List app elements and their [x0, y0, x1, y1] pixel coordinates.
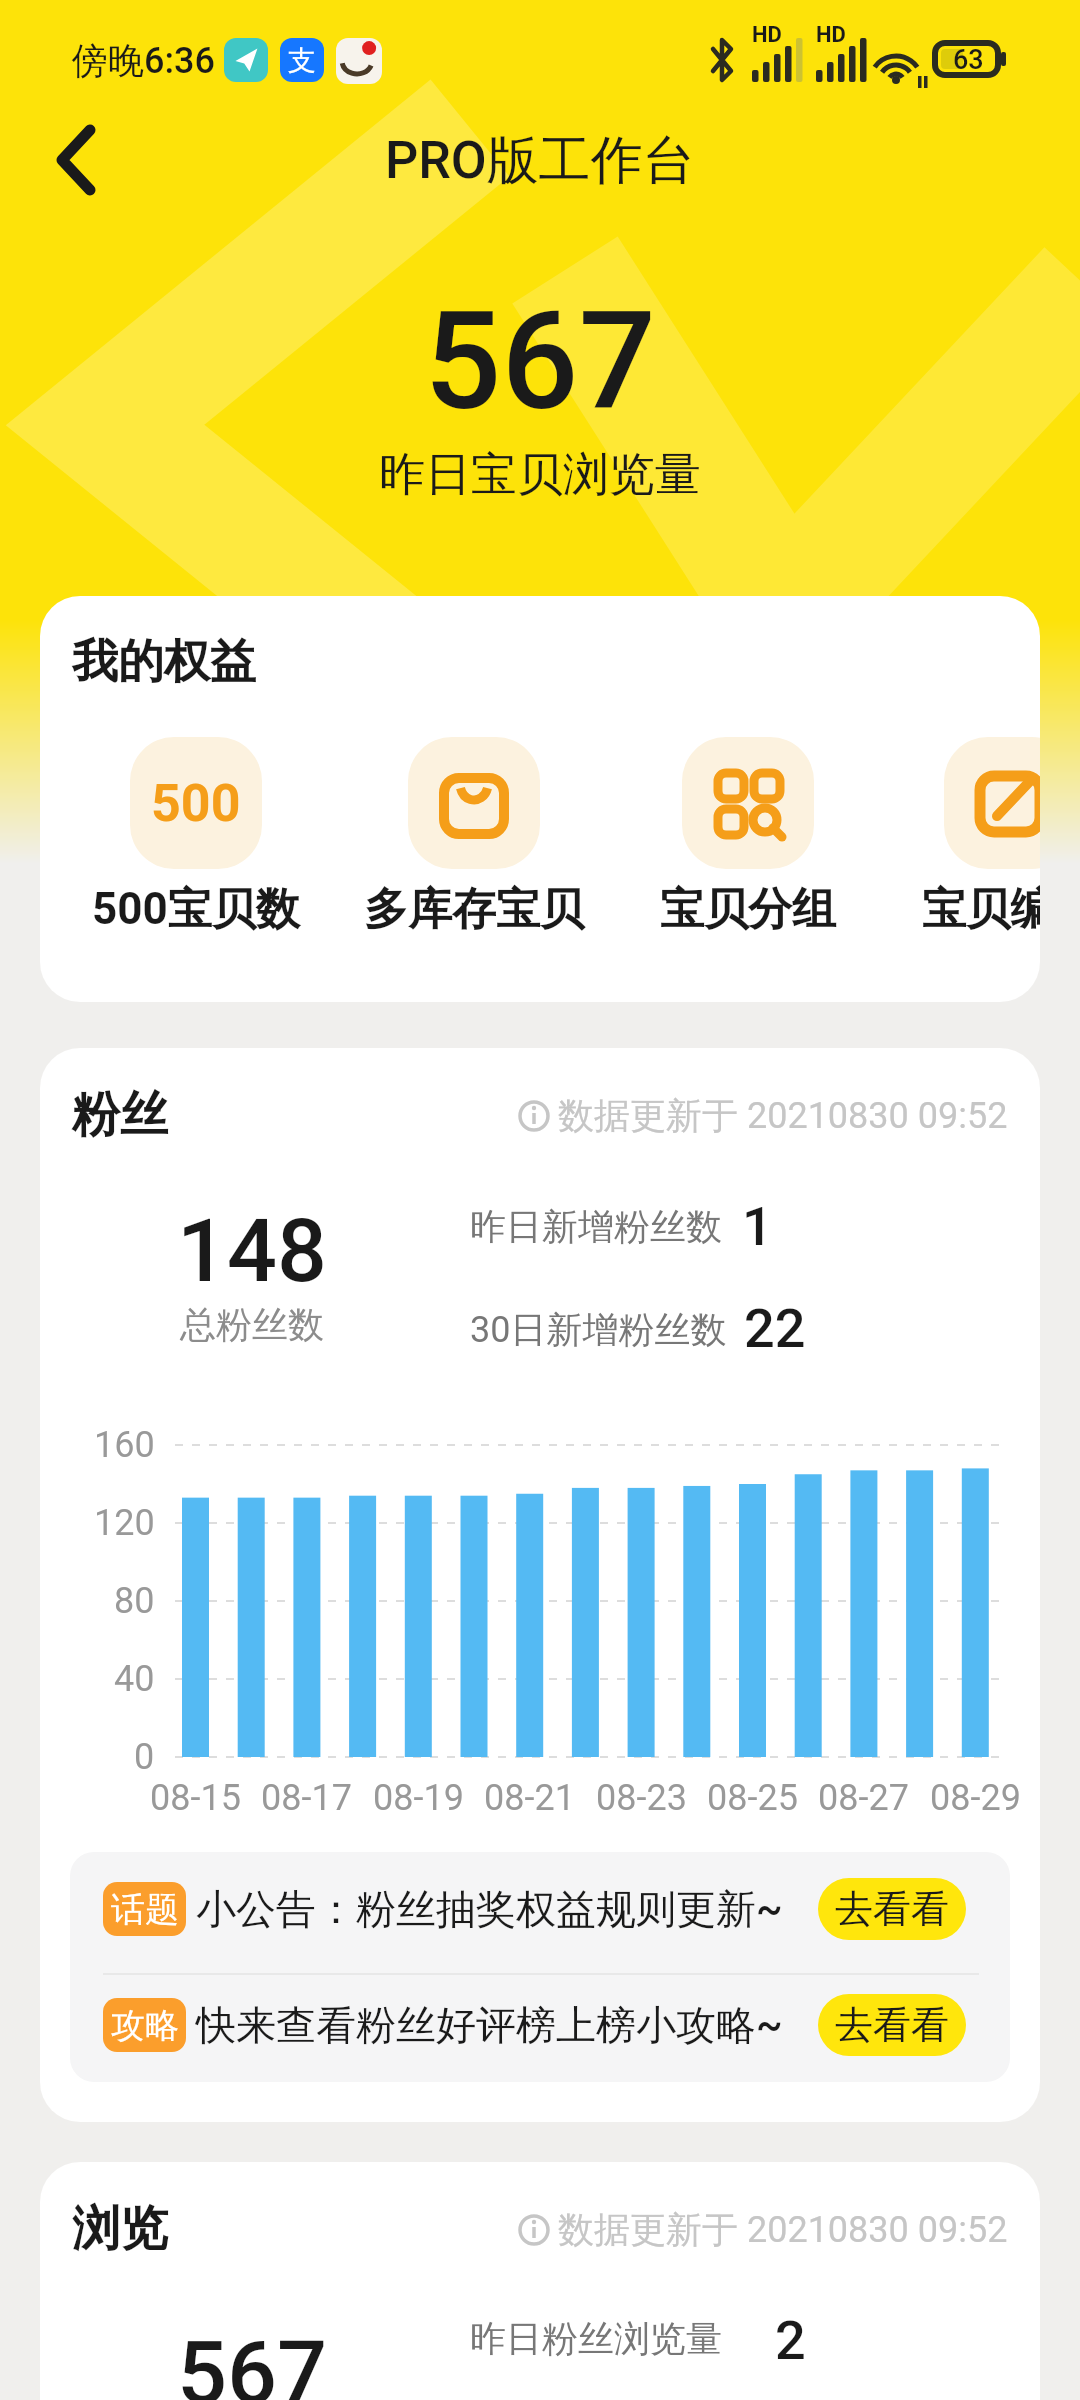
staticText: 支 — [288, 43, 316, 78]
staticText: 08-21 — [484, 1777, 575, 1819]
button[interactable] — [384, 737, 564, 967]
staticText: HD — [816, 22, 846, 48]
staticText: 总粉丝数 — [180, 1302, 324, 1347]
staticText: 昨日宝贝浏览量 — [379, 446, 701, 504]
staticText: 567 — [424, 282, 656, 438]
staticText: 宝贝编辑 — [922, 882, 1040, 937]
staticText: 22 — [744, 1297, 806, 1355]
staticText: 昨日新增粉丝数 — [470, 1204, 722, 1249]
staticText: 30日新增粉丝数 — [470, 1307, 727, 1352]
staticText: 昨日粉丝浏览量 — [470, 2316, 722, 2361]
button[interactable] — [658, 737, 838, 967]
staticText: 08-25 — [707, 1777, 798, 1819]
staticText: 傍晚6:36 — [72, 38, 215, 83]
staticText: 话题 — [111, 1888, 179, 1931]
staticText: 宝贝分组 — [660, 882, 836, 937]
staticText: 120 — [94, 1502, 155, 1544]
staticText: 08-15 — [150, 1777, 241, 1819]
staticText: 08-23 — [596, 1777, 687, 1819]
button[interactable] — [40, 118, 120, 202]
staticText: 160 — [94, 1424, 155, 1466]
staticText: 08-29 — [930, 1777, 1021, 1819]
button[interactable]: 去看看 — [818, 1994, 966, 2056]
staticText: HD — [752, 22, 782, 48]
staticText: 快来查看粉丝好评榜上榜小攻略~ — [196, 2000, 783, 2050]
staticText: 粉丝 — [72, 1085, 168, 1145]
button[interactable]: 攻略 — [70, 1968, 1010, 2082]
staticText: PRO版工作台 — [385, 128, 695, 194]
staticText: 小公告：粉丝抽奖权益规则更新~ — [196, 1884, 783, 1934]
button[interactable] — [106, 737, 286, 967]
staticText: 08-27 — [818, 1777, 909, 1819]
button[interactable]: 话题 — [70, 1852, 1010, 1966]
staticText: 08-17 — [261, 1777, 352, 1819]
staticText: 80 — [114, 1580, 155, 1622]
staticText: 去看看 — [835, 1885, 949, 1933]
button[interactable]: 去看看 — [818, 1878, 966, 1940]
staticText: 40 — [114, 1658, 155, 1700]
staticText: 1 — [742, 1195, 773, 1253]
staticText: 数据更新于 20210830 09:52 — [558, 1093, 1008, 1138]
staticText: 数据更新于 20210830 09:52 — [558, 2207, 1008, 2252]
staticText: 08-19 — [373, 1777, 464, 1819]
staticText: 500 — [151, 773, 241, 834]
staticText: 63 — [953, 44, 984, 76]
staticText: 500宝贝数 — [92, 882, 300, 937]
staticText: 2 — [775, 2309, 806, 2367]
staticText: 多库存宝贝 — [364, 882, 584, 937]
staticText: 浏览 — [72, 2199, 168, 2259]
staticText: 攻略 — [111, 2004, 179, 2047]
staticText: 148 — [177, 1199, 328, 1302]
staticText: 我的权益 — [72, 633, 256, 691]
button[interactable] — [920, 737, 1040, 967]
staticText: 567 — [177, 2321, 328, 2400]
staticText: 0 — [134, 1736, 155, 1778]
staticText: 去看看 — [835, 2001, 949, 2049]
